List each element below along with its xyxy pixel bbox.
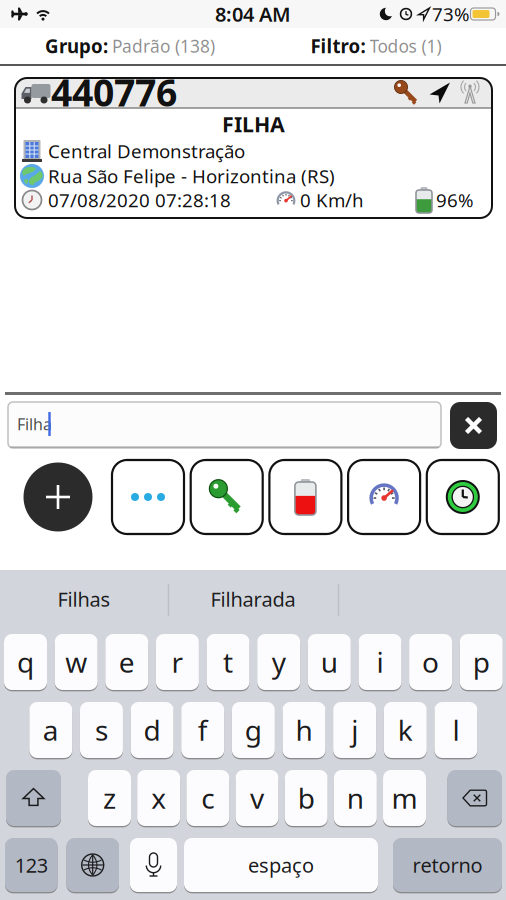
- staticText: a: [43, 711, 59, 749]
- button[interactable]: Time: [427, 460, 499, 534]
- button[interactable]: l: [434, 701, 477, 759]
- button[interactable]: w: [55, 633, 98, 691]
- staticText: Grupo:: [45, 34, 108, 58]
- staticText: i: [376, 643, 383, 681]
- button[interactable]: Close: [450, 402, 497, 449]
- staticText: y: [272, 643, 286, 681]
- staticText: Filha: [17, 413, 52, 435]
- staticText: Central Demonstração: [48, 139, 245, 163]
- staticText: 73%: [432, 2, 470, 26]
- button[interactable]: k: [384, 701, 427, 759]
- staticText: b: [298, 779, 315, 817]
- staticText: h: [295, 711, 312, 749]
- button[interactable]: x: [137, 769, 180, 827]
- button[interactable]: q: [4, 633, 47, 691]
- button[interactable]: m: [383, 769, 426, 827]
- staticText: s: [95, 711, 108, 749]
- staticText: 440776: [51, 67, 177, 117]
- staticText: k: [398, 711, 413, 749]
- button[interactable]: s: [80, 701, 123, 759]
- staticText: retorno: [412, 852, 482, 878]
- staticText: q: [17, 643, 34, 681]
- staticText: Filhas: [57, 586, 110, 612]
- button[interactable]: b: [285, 769, 328, 827]
- button[interactable]: Filtro:: [310, 34, 441, 58]
- button[interactable]: Shift: [6, 769, 61, 827]
- staticText: Filharada: [210, 586, 295, 612]
- staticText: t: [223, 643, 233, 681]
- button[interactable]: o: [409, 633, 452, 691]
- button[interactable]: 123: [5, 837, 57, 893]
- staticText: u: [321, 643, 338, 681]
- button[interactable]: 440776: [15, 78, 492, 218]
- button[interactable]: y: [257, 633, 300, 691]
- staticText: o: [422, 643, 439, 681]
- staticText: p: [473, 643, 490, 681]
- button[interactable]: t: [207, 633, 250, 691]
- staticText: v: [250, 779, 264, 817]
- button[interactable]: g: [232, 701, 275, 759]
- button[interactable]: i: [358, 633, 401, 691]
- button[interactable]: Filhas: [0, 571, 168, 627]
- staticText: f: [198, 711, 208, 749]
- staticText: Filtro:: [310, 34, 365, 58]
- button[interactable]: h: [282, 701, 325, 759]
- button[interactable]: r: [156, 633, 199, 691]
- button[interactable]: z: [88, 769, 131, 827]
- button[interactable]: u: [308, 633, 351, 691]
- button[interactable]: Add: [23, 462, 92, 531]
- button[interactable]: a: [29, 701, 72, 759]
- button[interactable]: Filharada: [169, 571, 337, 627]
- button[interactable]: e: [105, 633, 148, 691]
- staticText: g: [245, 711, 262, 749]
- staticText: Todos (1): [369, 34, 441, 57]
- staticText: x: [151, 779, 166, 817]
- button[interactable]: v: [235, 769, 278, 827]
- staticText: 8:04 AM: [215, 1, 291, 27]
- staticText: r: [171, 643, 183, 681]
- staticText: Padrão (138): [112, 34, 215, 57]
- button[interactable]: d: [131, 701, 174, 759]
- staticText: FILHA: [222, 110, 285, 138]
- staticText: j: [351, 711, 358, 749]
- button[interactable]: Grupo:: [45, 34, 215, 58]
- staticText: 123: [15, 852, 48, 878]
- staticText: 0 Km/h: [300, 188, 364, 212]
- button[interactable]: Dictation: [130, 837, 177, 893]
- button[interactable]: p: [460, 633, 503, 691]
- staticText: 07/08/2020 07:28:18: [48, 188, 231, 212]
- button[interactable]: Speed: [348, 460, 420, 534]
- button[interactable]: Delete: [447, 769, 502, 827]
- staticText: m: [391, 779, 417, 817]
- staticText: n: [347, 779, 364, 817]
- staticText: d: [144, 711, 161, 749]
- staticText: e: [119, 643, 135, 681]
- staticText: z: [103, 779, 116, 817]
- button[interactable]: f: [181, 701, 224, 759]
- button[interactable]: n: [334, 769, 377, 827]
- staticText: 96%: [436, 188, 474, 212]
- button[interactable]: espaço: [184, 837, 378, 893]
- button[interactable]: More: [112, 460, 184, 534]
- button[interactable]: retorno: [393, 837, 502, 893]
- staticText: Rua São Felipe - Horizontina (RS): [48, 164, 335, 188]
- staticText: l: [452, 711, 459, 749]
- button[interactable]: Next keyboard: [66, 837, 119, 893]
- button[interactable]: c: [186, 769, 229, 827]
- button[interactable]: Battery: [269, 460, 341, 534]
- staticText: espaço: [248, 852, 314, 878]
- button[interactable]: j: [333, 701, 376, 759]
- button[interactable]: Key: [191, 460, 263, 534]
- staticText: c: [201, 779, 214, 817]
- staticText: w: [65, 643, 87, 681]
